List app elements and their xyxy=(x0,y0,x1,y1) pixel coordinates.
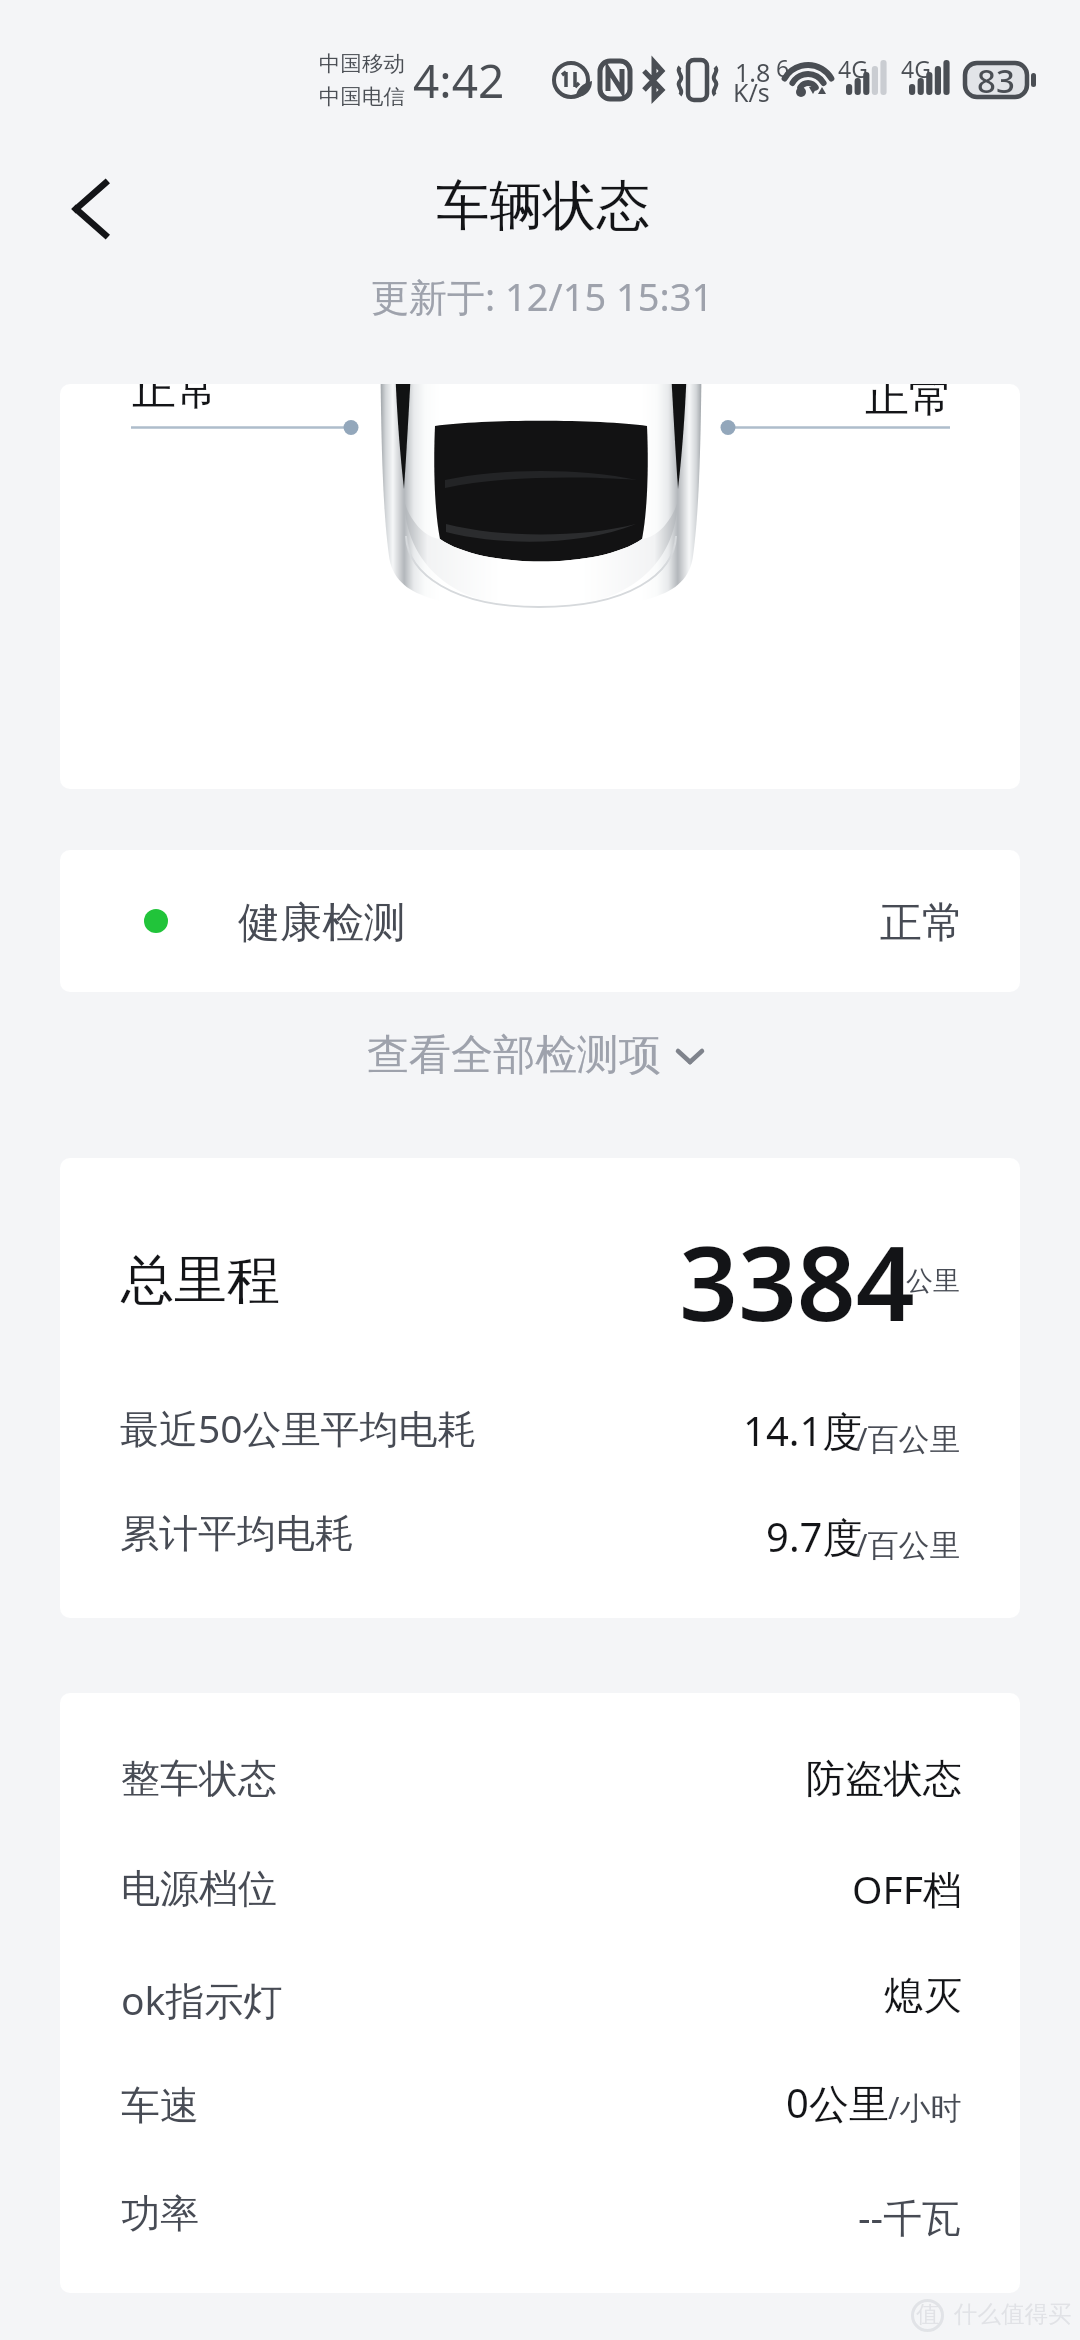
button[interactable] xyxy=(60,1815,1020,1923)
button[interactable]: 健康检测 xyxy=(60,850,1020,992)
button[interactable]: Back xyxy=(48,166,134,252)
staticText: 9.7度 xyxy=(766,1509,863,1564)
staticText: 中国电信 xyxy=(319,83,405,110)
staticText: 3384 xyxy=(679,1211,915,1351)
staticText: 什么值得买 xyxy=(954,2299,1072,2329)
button[interactable] xyxy=(60,1204,1020,1328)
button[interactable] xyxy=(60,1388,1020,1482)
staticText: 值 xyxy=(916,2300,939,2329)
staticText: --千瓦 xyxy=(858,2190,962,2243)
button[interactable]: 查看全部检测项 xyxy=(355,1019,715,1092)
staticText: 车辆状态 xyxy=(436,172,650,239)
staticText: 83 xyxy=(977,58,1015,103)
staticText: K/s xyxy=(733,75,770,109)
staticText: 中国移动 xyxy=(319,50,405,77)
button[interactable] xyxy=(60,2139,1020,2247)
staticText: 累计平均电耗 xyxy=(120,1509,354,1558)
staticText: 14.1度 xyxy=(743,1403,863,1458)
staticText: 4G xyxy=(901,53,931,84)
staticText: 熄灭 xyxy=(884,1971,962,2020)
staticText: /百公里 xyxy=(856,1417,961,1459)
staticText: 功率 xyxy=(121,2189,199,2238)
staticText: 更新于: 12/15 15:31 xyxy=(371,270,714,322)
staticText: 4G xyxy=(838,53,868,84)
staticText: 0公里 xyxy=(786,2075,889,2130)
staticText: 4:42 xyxy=(413,49,505,112)
staticText: 6 xyxy=(776,52,790,83)
staticText: /小时 xyxy=(888,2086,962,2128)
staticText: OFF档 xyxy=(852,1862,962,1915)
button[interactable] xyxy=(60,1494,1020,1588)
staticText: 总里程 xyxy=(121,1247,280,1314)
staticText: /百公里 xyxy=(856,1523,961,1565)
button[interactable] xyxy=(60,2031,1020,2139)
staticText: 最近50公里平均电耗 xyxy=(120,1401,477,1454)
staticText: 电源档位 xyxy=(121,1864,277,1913)
staticText: 查看全部检测项 xyxy=(367,1029,661,1082)
staticText: 车速 xyxy=(121,2081,199,2130)
staticText: 健康检测 xyxy=(238,897,406,950)
staticText: 正常 xyxy=(132,384,220,417)
staticText: 防盗状态 xyxy=(806,1754,962,1803)
staticText: 1.8 xyxy=(735,55,771,89)
staticText: 正常 xyxy=(880,897,964,950)
staticText: 公里 xyxy=(906,1264,960,1298)
staticText: ok指示灯 xyxy=(121,1973,283,2026)
button[interactable] xyxy=(60,1923,1020,2031)
staticText: 正常 xyxy=(865,384,953,424)
staticText: 整车状态 xyxy=(121,1754,277,1803)
button[interactable] xyxy=(60,1707,1020,1815)
